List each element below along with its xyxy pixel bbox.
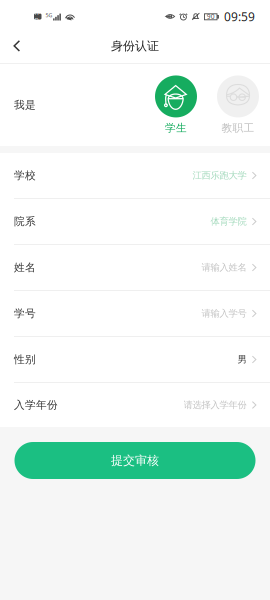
staticText: 入学年份 — [14, 398, 58, 411]
button[interactable]: 姓名 — [0, 245, 270, 291]
staticText: 姓名 — [14, 261, 36, 274]
staticText: 请输入姓名 — [201, 262, 246, 273]
staticText: 我是 — [14, 98, 36, 111]
staticText: 教职工 — [221, 121, 254, 134]
staticText: 请选择入学年份 — [183, 399, 246, 411]
staticText: 学生 — [165, 121, 187, 134]
staticText: 学号 — [14, 307, 36, 320]
staticText: 90 — [207, 12, 215, 21]
button[interactable]: 提交审核 — [14, 442, 255, 479]
button[interactable]: 入学年份 — [0, 383, 270, 427]
button[interactable]: 学号 — [0, 291, 270, 337]
button[interactable]: 学生 — [152, 75, 200, 134]
button[interactable]: Back — [0, 29, 34, 63]
staticText: 性别 — [14, 353, 36, 366]
staticText: 身份认证 — [111, 39, 159, 53]
button[interactable]: 性别 — [0, 337, 270, 383]
button[interactable]: 学校 — [0, 153, 270, 199]
staticText: HD — [35, 9, 41, 24]
staticText: 江西乐跑大学 — [192, 170, 246, 181]
button[interactable]: 院系 — [0, 199, 270, 245]
staticText: 5G — [45, 12, 52, 19]
staticText: 院系 — [14, 215, 36, 228]
button[interactable]: 教职工 — [214, 75, 262, 134]
staticText: 09:59 — [224, 8, 255, 24]
staticText: 学校 — [14, 169, 36, 182]
staticText: 提交审核 — [111, 453, 159, 468]
staticText: 体育学院 — [210, 216, 246, 227]
staticText: 男 — [237, 354, 246, 365]
staticText: 请输入学号 — [201, 308, 246, 319]
